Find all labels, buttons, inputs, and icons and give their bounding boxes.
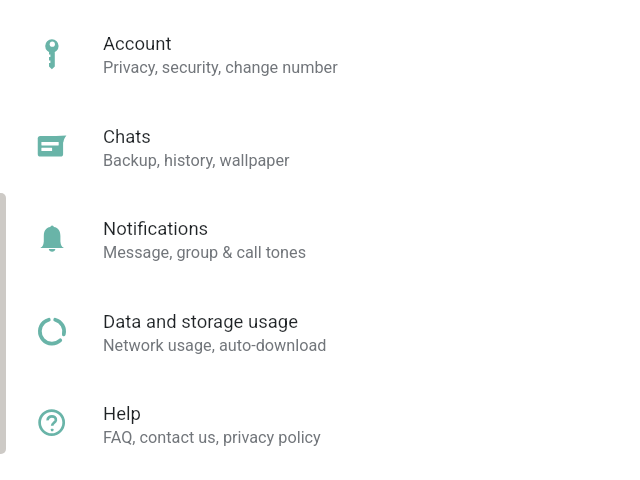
button[interactable]: Help [0, 394, 640, 480]
staticText: Network usage, auto-download [103, 336, 327, 355]
staticText: Notifications [103, 218, 209, 240]
staticText: Data and storage usage [103, 311, 298, 333]
other: Notifications [37, 223, 67, 259]
other: Help [37, 409, 67, 445]
staticText: Backup, history, wallpaper [103, 151, 290, 170]
other: Data and storage usage [37, 317, 67, 353]
staticText: Privacy, security, change number [103, 58, 338, 77]
button[interactable]: Notifications [0, 209, 640, 302]
staticText: Help [103, 403, 141, 425]
button[interactable]: Account [0, 24, 640, 117]
other: Chats [37, 130, 67, 166]
staticText: Chats [103, 126, 151, 148]
button[interactable]: Chats [0, 117, 640, 210]
staticText: Account [103, 33, 172, 55]
other: Account [37, 35, 67, 71]
staticText: Message, group & call tones [103, 243, 307, 262]
staticText: FAQ, contact us, privacy policy [103, 428, 321, 447]
button[interactable]: Data and storage usage [0, 302, 640, 395]
